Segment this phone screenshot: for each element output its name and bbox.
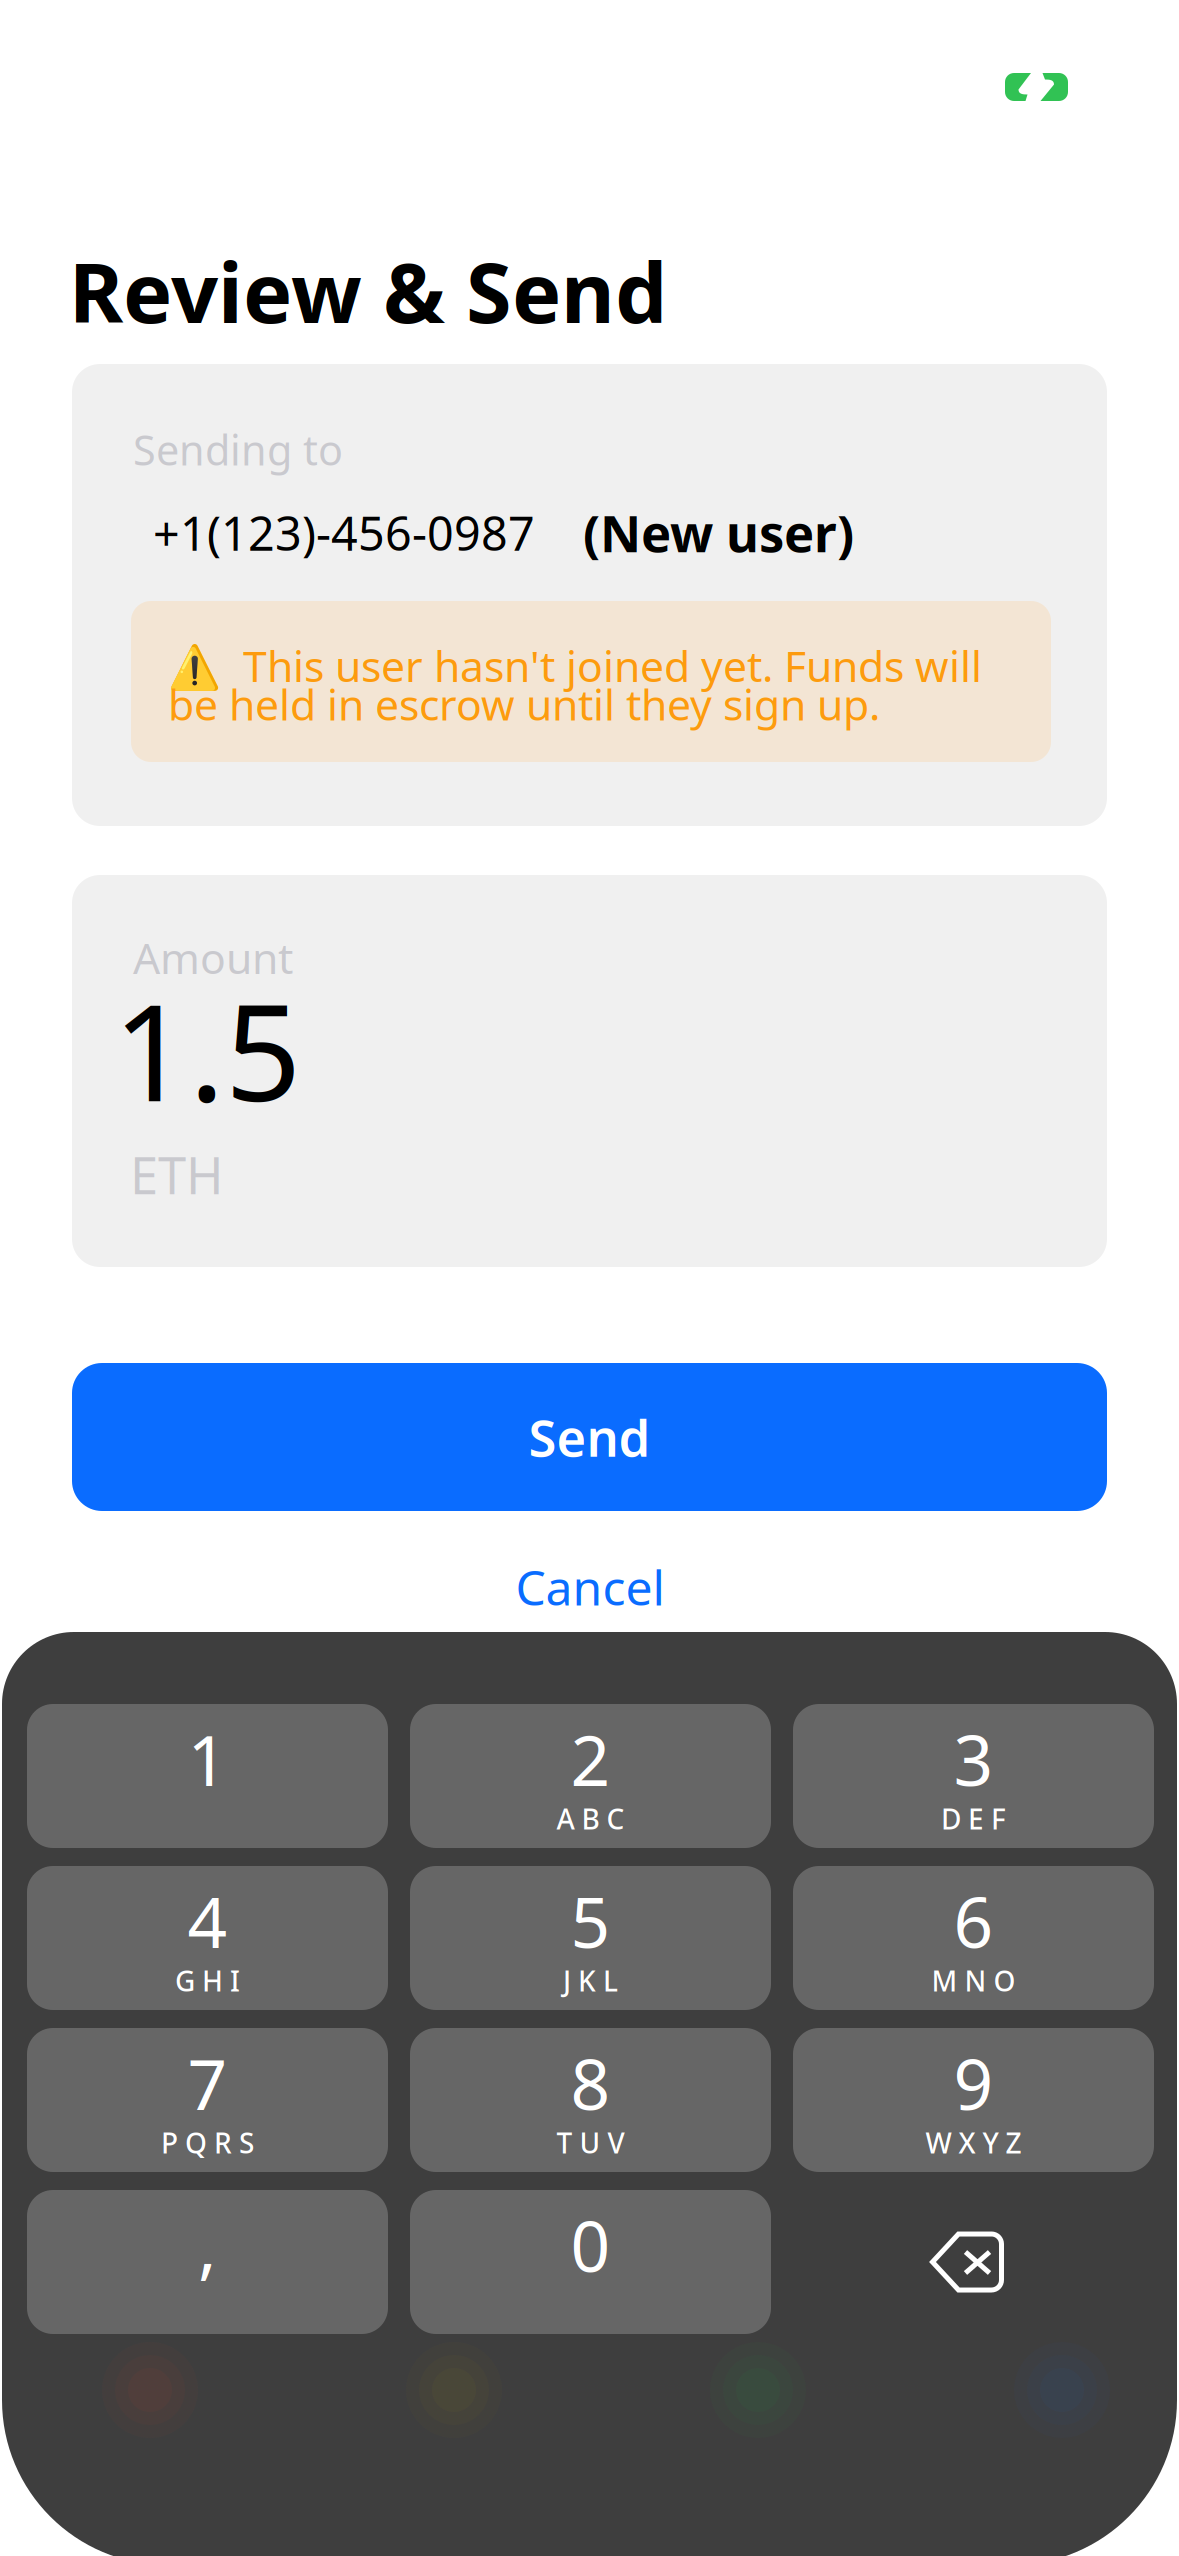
button[interactable]: 8 xyxy=(410,2028,771,2172)
staticText: ETH xyxy=(130,1141,224,1208)
staticText: J K L xyxy=(563,1962,618,1999)
button[interactable]: 3 xyxy=(793,1704,1154,1848)
button[interactable]: Send xyxy=(72,1363,1107,1511)
staticText: Sending to xyxy=(133,422,343,477)
button[interactable]: , xyxy=(27,2190,388,2334)
button[interactable]: 7 xyxy=(27,2028,388,2172)
staticText: Cancel xyxy=(515,1555,664,1619)
staticText: 8 xyxy=(570,2037,610,2129)
staticText: 5 xyxy=(570,1875,610,1967)
staticText: 3 xyxy=(953,1713,993,1805)
staticText: T U V xyxy=(556,2124,624,2161)
staticText: 2 xyxy=(570,1713,610,1805)
button[interactable]: 6 xyxy=(793,1866,1154,2010)
staticText: 1.5 xyxy=(113,961,301,1138)
button[interactable]: 1 xyxy=(27,1704,388,1848)
staticText: 9 xyxy=(953,2037,993,2129)
button[interactable]: 0 xyxy=(410,2190,771,2334)
button[interactable]: 2 xyxy=(410,1704,771,1848)
staticText: A B C xyxy=(556,1800,624,1837)
staticText: 7 xyxy=(187,2037,227,2129)
staticText: D E F xyxy=(941,1800,1006,1837)
staticText: 4 xyxy=(187,1875,227,1967)
staticText: M N O xyxy=(931,1962,1015,1999)
button[interactable]: Cancel xyxy=(440,1552,740,1622)
staticText: Amount xyxy=(133,929,293,986)
staticText: , xyxy=(198,2199,217,2291)
staticText: G H I xyxy=(175,1962,240,1999)
button[interactable]: Delete xyxy=(793,2190,1154,2334)
staticText: ⚠️ This user hasn't joined yet. Funds wi… xyxy=(168,637,982,732)
staticText: +1(123)-456-0987 xyxy=(153,502,535,564)
staticText: 1 xyxy=(187,1713,227,1805)
button[interactable]: 9 xyxy=(793,2028,1154,2172)
staticText: Review & Send xyxy=(69,236,667,346)
button[interactable]: 5 xyxy=(410,1866,771,2010)
staticText: (New user) xyxy=(583,499,854,566)
staticText: P Q R S xyxy=(161,2124,254,2161)
button[interactable]: 4 xyxy=(27,1866,388,2010)
staticText: W X Y Z xyxy=(925,2124,1021,2161)
staticText: 0 xyxy=(570,2199,610,2291)
staticText: 6 xyxy=(953,1875,993,1967)
staticText: Send xyxy=(528,1403,650,1471)
